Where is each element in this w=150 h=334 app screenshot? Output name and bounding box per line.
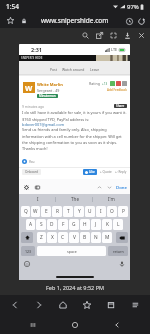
button[interactable]: Z: [37, 232, 46, 243]
button[interactable]: Settings: [22, 183, 30, 191]
button[interactable]: M: [102, 232, 112, 243]
button[interactable]: Post: [50, 67, 57, 72]
button[interactable]: P: [118, 206, 128, 217]
button[interactable]: J: [91, 219, 101, 230]
button[interactable]: Fullscreen: [106, 28, 120, 42]
button[interactable]: I'm: [93, 194, 130, 204]
staticText: 97%: [127, 3, 139, 11]
button[interactable]: Q: [21, 206, 30, 217]
staticText: 9 minutes ago: [22, 104, 45, 108]
staticText: +13: [102, 82, 108, 86]
button[interactable]: Previous field: [95, 183, 103, 191]
staticText: I: [100, 208, 102, 215]
button[interactable]: Add Feedback: [107, 88, 127, 92]
button[interactable]: bdover007@gmail.com: [22, 122, 65, 127]
staticText: Send us friends and family only. Also, s…: [22, 127, 128, 151]
button[interactable]: Forward: [30, 296, 48, 314]
staticText: LTE: [111, 47, 118, 52]
button[interactable]: B: [80, 232, 90, 243]
button[interactable]: X: [47, 232, 57, 243]
staticText: W: [33, 208, 38, 215]
staticText: Share: [116, 104, 125, 108]
staticText: www.snipershide.com: [41, 16, 109, 25]
button[interactable]: R: [52, 206, 62, 217]
button[interactable]: A: [26, 219, 35, 230]
button[interactable]: Back: [6, 296, 24, 314]
staticText: E: [45, 208, 48, 215]
button[interactable]: Onboard: [25, 170, 38, 174]
button[interactable]: Shift: [21, 232, 33, 243]
button[interactable]: G: [69, 219, 79, 230]
button[interactable]: L: [113, 219, 123, 230]
staticText: J: [95, 221, 97, 228]
button[interactable]: Clipboard: [33, 183, 41, 191]
button[interactable]: Next field: [105, 183, 113, 191]
staticText: I'm: [108, 196, 115, 202]
button[interactable]: Back: [108, 316, 126, 334]
button[interactable]: Page info: [123, 15, 135, 27]
staticText: X: [51, 234, 54, 241]
button[interactable]: I: [96, 206, 106, 217]
button[interactable]: ↩ Reply: [115, 170, 127, 174]
staticText: Y: [78, 208, 81, 215]
staticText: C: [61, 234, 65, 241]
staticText: B: [83, 234, 87, 241]
button[interactable]: Watch around: [62, 67, 85, 72]
button[interactable]: N: [91, 232, 101, 243]
button[interactable]: space: [37, 246, 106, 256]
button[interactable]: V: [69, 232, 79, 243]
button[interactable]: Download: [120, 28, 134, 42]
staticText: M: [105, 234, 110, 241]
button[interactable]: Menu: [126, 296, 144, 314]
button[interactable]: Y: [74, 206, 84, 217]
button[interactable]: Share: [116, 104, 125, 108]
button[interactable]: return: [108, 246, 128, 256]
button[interactable]: Backspace: [116, 232, 128, 243]
button[interactable]: Home: [54, 296, 72, 314]
button[interactable]: Bookmarks: [78, 296, 96, 314]
button[interactable]: U: [85, 206, 95, 217]
staticText: Feb 1, 2024 at 9:52 PM: [46, 284, 104, 291]
staticText: H: [83, 221, 87, 228]
staticText: F: [62, 221, 65, 228]
staticText: I do still have it available for sale, i…: [22, 110, 128, 122]
staticText: return: [113, 249, 124, 254]
button[interactable]: Emoji: [23, 260, 31, 268]
button[interactable]: The: [56, 194, 93, 204]
button[interactable]: Bookmark: [4, 13, 17, 28]
button[interactable]: Home: [66, 316, 84, 334]
staticText: N: [94, 234, 98, 241]
button[interactable]: D: [47, 219, 57, 230]
staticText: P: [122, 208, 125, 215]
button[interactable]: Close: [134, 28, 148, 42]
staticText: Minuteman: [39, 94, 56, 98]
button[interactable]: White Marlin: [37, 82, 63, 87]
staticText: A: [29, 221, 33, 228]
button[interactable]: Tabs: [102, 296, 120, 314]
button[interactable]: K: [102, 219, 112, 230]
button[interactable]: + Quote: [100, 170, 112, 174]
button[interactable]: Zoom: [78, 28, 92, 42]
button[interactable]: W: [31, 206, 40, 217]
button[interactable]: I: [19, 194, 56, 204]
button[interactable]: C: [58, 232, 68, 243]
button[interactable]: Recents: [24, 316, 42, 334]
staticText: 123: [25, 249, 32, 254]
button[interactable]: Reload: [135, 15, 147, 27]
button[interactable]: H: [80, 219, 90, 230]
button[interactable]: Done: [116, 184, 127, 190]
button[interactable]: E: [41, 206, 51, 217]
staticText: Z: [40, 234, 43, 241]
staticText: The: [71, 196, 79, 202]
staticText: Like: [89, 170, 95, 174]
button[interactable]: Leave: [90, 67, 100, 72]
button[interactable]: S: [36, 219, 46, 230]
button[interactable]: O: [107, 206, 117, 217]
button[interactable]: T: [63, 206, 73, 217]
button[interactable]: 123: [21, 246, 35, 256]
button[interactable]: Like: [85, 170, 95, 174]
button[interactable]: Share: [92, 28, 106, 42]
button[interactable]: F: [58, 219, 68, 230]
staticText: S: [40, 221, 43, 228]
button[interactable]: Dictate: [118, 260, 126, 268]
